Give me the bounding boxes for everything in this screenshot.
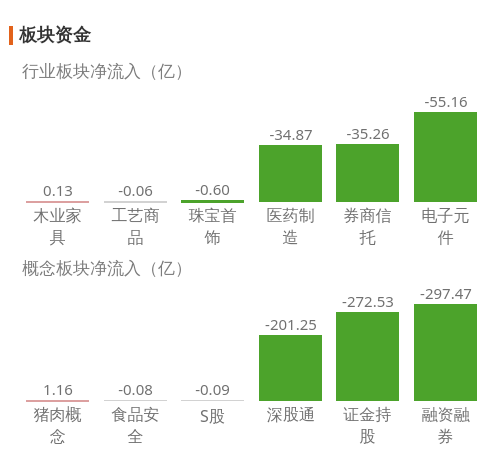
staticText: 工艺商品 — [104, 206, 167, 248]
button[interactable]: 食品安全 — [104, 405, 167, 447]
button[interactable]: 板块资金 — [0, 24, 504, 47]
staticText: 融资融券 — [414, 405, 477, 447]
staticText: -55.16 — [424, 91, 468, 111]
staticText: -272.53 — [342, 291, 394, 311]
staticText: -34.87 — [269, 124, 313, 144]
button[interactable]: 融资融券 — [414, 405, 477, 447]
staticText: -0.60 — [195, 179, 230, 199]
staticText: 概念板块净流入（亿） — [22, 258, 192, 279]
button[interactable]: 深股通 — [259, 405, 322, 425]
staticText: S股 — [200, 405, 225, 427]
staticText: 0.13 — [43, 180, 73, 200]
staticText: 证金持股 — [336, 405, 399, 447]
staticText: -35.26 — [346, 123, 390, 143]
staticText: 猪肉概念 — [26, 405, 89, 447]
button[interactable]: 电子元件 — [414, 206, 477, 248]
staticText: 电子元件 — [414, 206, 477, 248]
staticText: -0.06 — [118, 180, 153, 200]
staticText: -0.09 — [195, 379, 230, 399]
button[interactable]: 工艺商品 — [104, 206, 167, 248]
staticText: 珠宝首饰 — [181, 206, 244, 248]
staticText: 深股通 — [267, 405, 315, 425]
staticText: 1.16 — [43, 379, 73, 399]
button[interactable]: S股 — [181, 405, 244, 427]
button[interactable]: 证金持股 — [336, 405, 399, 447]
staticText: -201.25 — [265, 314, 317, 334]
staticText: -297.47 — [420, 283, 472, 303]
staticText: -0.08 — [118, 379, 153, 399]
staticText: 行业板块净流入（亿） — [22, 61, 192, 82]
button[interactable]: 券商信托 — [336, 206, 399, 248]
staticText: 券商信托 — [336, 206, 399, 248]
staticText: 医药制造 — [259, 206, 322, 248]
button[interactable]: 木业家具 — [26, 206, 89, 248]
staticText: 板块资金 — [19, 24, 91, 47]
staticText: 食品安全 — [104, 405, 167, 447]
button[interactable]: 猪肉概念 — [26, 405, 89, 447]
button[interactable]: 医药制造 — [259, 206, 322, 248]
staticText: 木业家具 — [26, 206, 89, 248]
button[interactable]: 珠宝首饰 — [181, 206, 244, 248]
